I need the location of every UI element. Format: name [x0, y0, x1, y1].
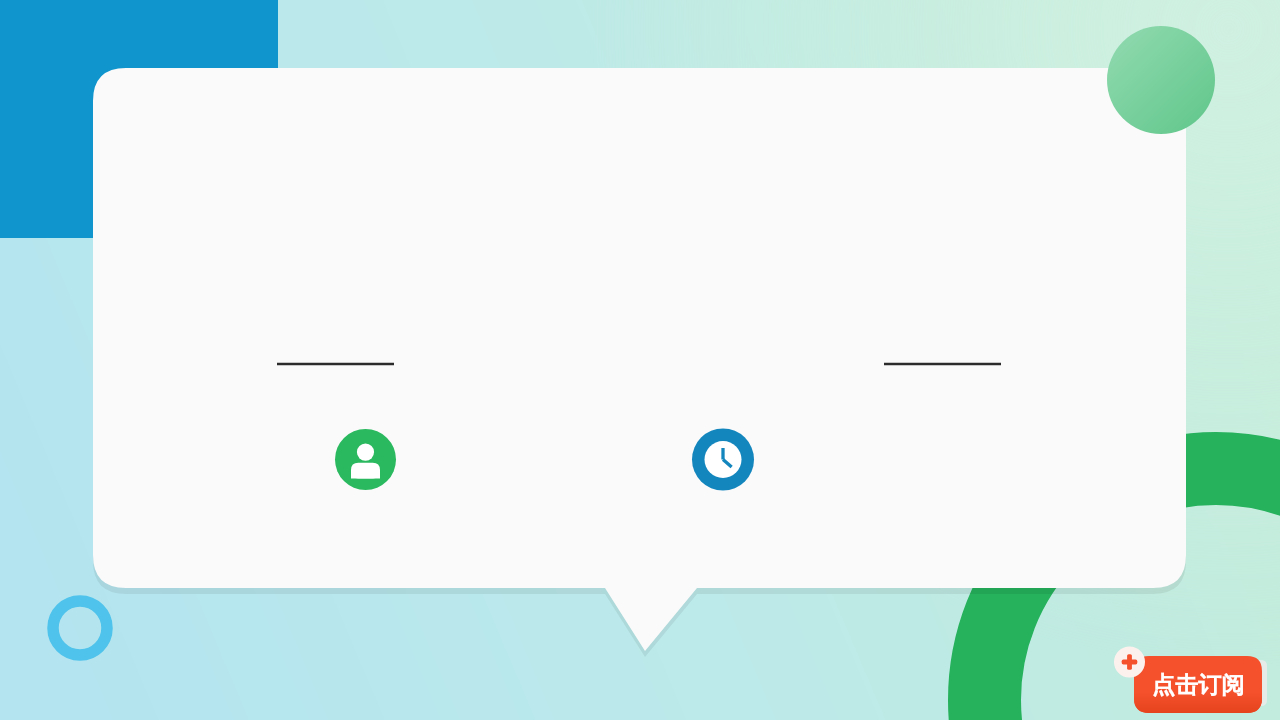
button[interactable]: 点击订阅	[0, 0, 1280, 720]
other: Information card	[0, 0, 1280, 720]
